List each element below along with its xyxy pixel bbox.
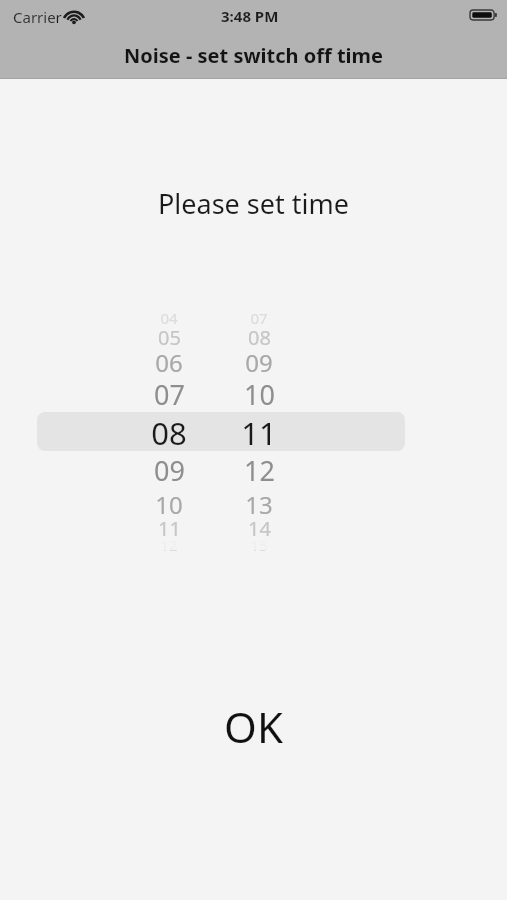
staticText: 09: [245, 346, 273, 379]
staticText: 05: [158, 324, 181, 351]
staticText: 07: [250, 308, 268, 328]
button[interactable]: OK: [204, 694, 303, 759]
staticText: Carrier: [13, 7, 62, 27]
staticText: 07: [154, 376, 185, 413]
staticText: 11: [241, 412, 277, 454]
staticText: 08: [151, 412, 187, 454]
other: Battery full: [470, 7, 498, 23]
staticText: 11: [158, 515, 181, 542]
staticText: 3:48 PM: [221, 6, 279, 26]
staticText: 06: [155, 346, 183, 379]
staticText: Noise - set switch off time: [124, 42, 383, 69]
staticText: 09: [154, 452, 185, 489]
button[interactable]: 04: [0, 300, 507, 550]
staticText: 15: [250, 535, 268, 555]
other: Wi-Fi signal: [63, 8, 85, 24]
staticText: 04: [160, 308, 178, 328]
staticText: 10: [244, 376, 275, 413]
staticText: Please set time: [158, 185, 349, 222]
staticText: 08: [248, 324, 271, 351]
staticText: 10: [155, 488, 183, 521]
staticText: 14: [248, 515, 271, 542]
staticText: 12: [160, 535, 178, 555]
staticText: OK: [224, 698, 283, 755]
staticText: 12: [244, 452, 275, 489]
staticText: 13: [245, 488, 273, 521]
